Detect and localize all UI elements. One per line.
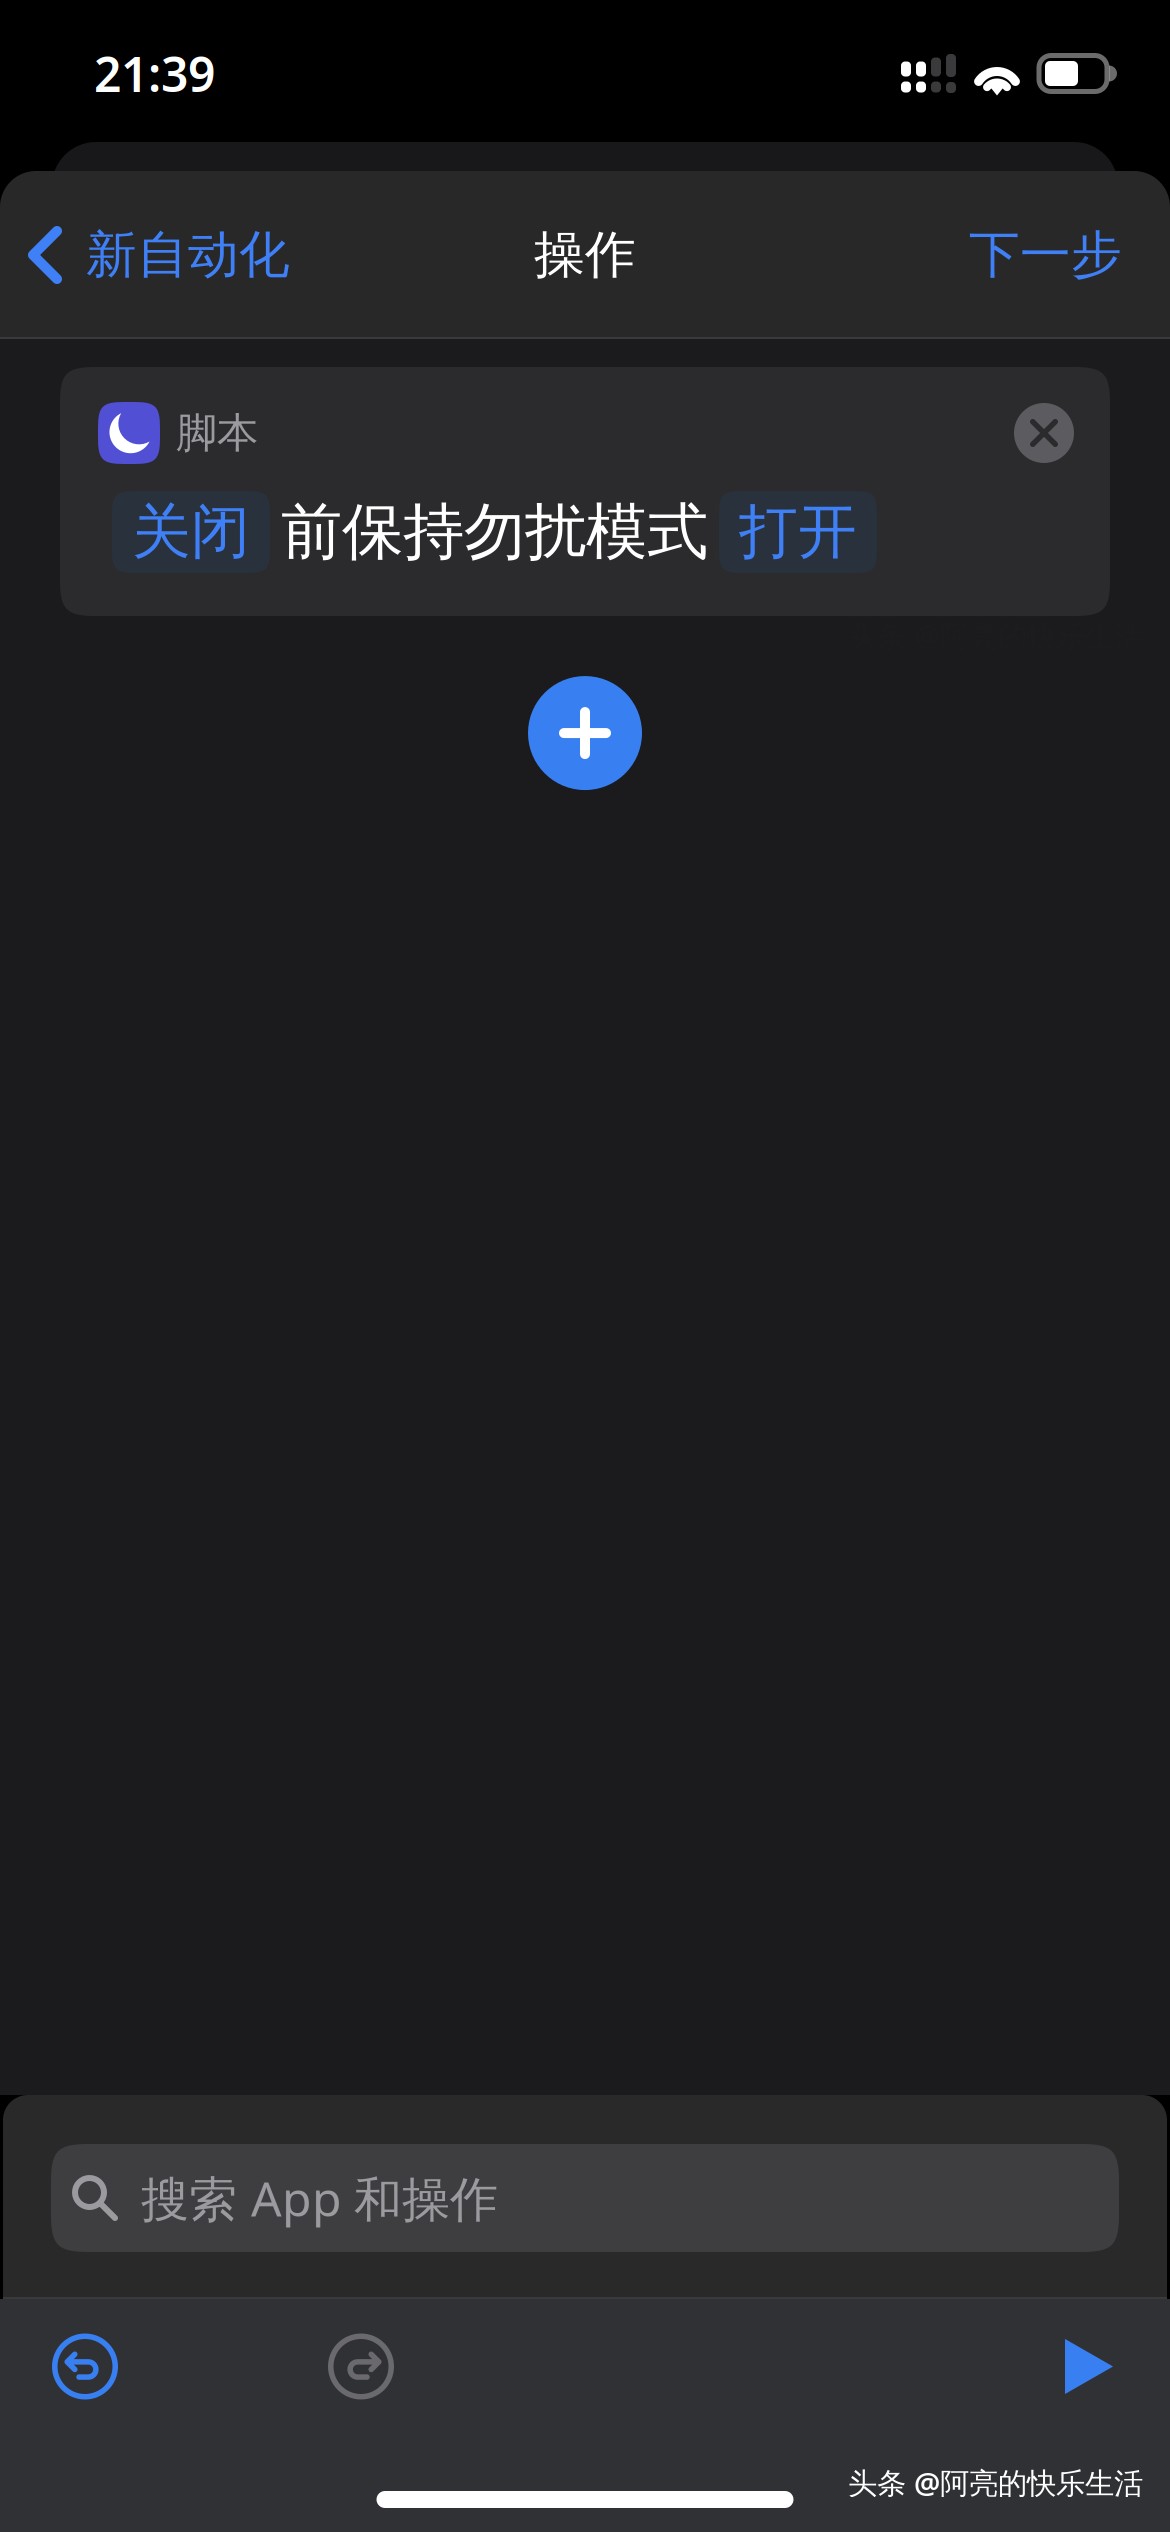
button[interactable]: Run bbox=[1064, 2338, 1114, 2395]
button[interactable]: Remove action bbox=[1014, 403, 1074, 463]
staticText: 操作 bbox=[534, 224, 636, 286]
button[interactable]: Add action bbox=[528, 676, 642, 790]
staticText: 头条 @阿亮的快乐生活 bbox=[848, 2463, 1143, 2502]
staticText: 下一步 bbox=[969, 224, 1122, 286]
staticText: 21:39 bbox=[94, 42, 215, 105]
button[interactable]: 下一步 bbox=[969, 198, 1170, 312]
staticText: 新自动化 bbox=[86, 224, 290, 286]
button[interactable]: 新自动化 bbox=[0, 198, 290, 312]
staticText: 前保持勿扰模式 bbox=[281, 494, 708, 570]
staticText: 关闭 bbox=[132, 496, 250, 568]
button[interactable]: Undo bbox=[52, 2333, 118, 2399]
button[interactable]: Redo bbox=[328, 2333, 394, 2399]
staticText: 打开 bbox=[739, 496, 857, 568]
staticText: 脚本 bbox=[176, 408, 258, 458]
staticText: 搜索 App 和操作 bbox=[141, 2166, 498, 2230]
